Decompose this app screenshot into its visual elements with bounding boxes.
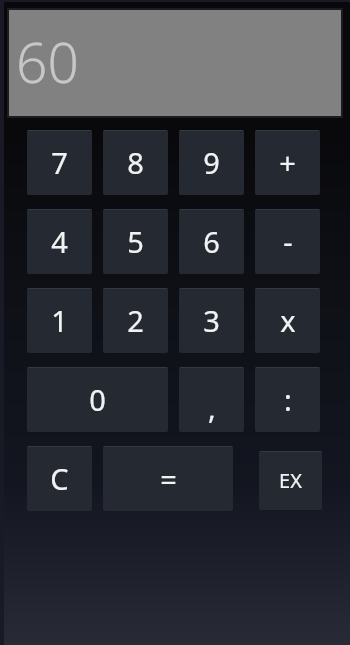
staticText: 1 xyxy=(51,301,68,340)
button[interactable]: - xyxy=(255,209,320,274)
staticText: , xyxy=(208,388,216,427)
button[interactable]: 3 xyxy=(179,288,244,353)
staticText: + xyxy=(279,143,296,182)
button[interactable]: x xyxy=(255,288,320,353)
staticText: EX xyxy=(279,467,302,494)
staticText: 6 xyxy=(203,222,220,261)
button[interactable]: 6 xyxy=(179,209,244,274)
button[interactable]: = xyxy=(103,446,233,511)
staticText: = xyxy=(160,459,177,498)
button[interactable]: + xyxy=(255,130,320,195)
button[interactable]: 0 xyxy=(27,367,168,432)
button[interactable]: , xyxy=(179,367,244,432)
button[interactable]: 9 xyxy=(179,130,244,195)
staticText: 7 xyxy=(51,143,68,182)
button[interactable]: : xyxy=(255,367,320,432)
button[interactable]: 2 xyxy=(103,288,168,353)
button[interactable]: 1 xyxy=(27,288,92,353)
staticText: : xyxy=(284,380,292,419)
staticText: 60 xyxy=(16,24,79,99)
staticText: 4 xyxy=(51,222,68,261)
button[interactable]: 4 xyxy=(27,209,92,274)
staticText: 2 xyxy=(127,301,144,340)
button[interactable]: 7 xyxy=(27,130,92,195)
staticText: 9 xyxy=(203,143,220,182)
staticText: C xyxy=(50,459,69,498)
staticText: x xyxy=(280,301,296,340)
button[interactable]: EX xyxy=(259,451,322,510)
button[interactable]: 60 xyxy=(9,10,341,116)
staticText: 8 xyxy=(127,143,144,182)
staticText: 5 xyxy=(127,222,144,261)
button[interactable]: C xyxy=(27,446,92,511)
button[interactable]: 5 xyxy=(103,209,168,274)
button[interactable]: 8 xyxy=(103,130,168,195)
staticText: 0 xyxy=(89,380,106,419)
staticText: - xyxy=(283,222,293,261)
staticText: 3 xyxy=(203,301,220,340)
